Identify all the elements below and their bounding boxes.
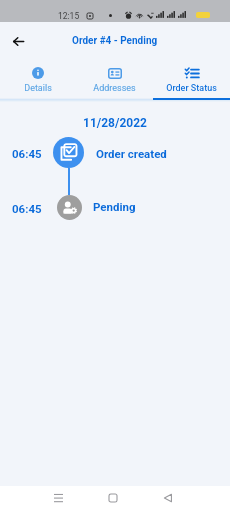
staticText: Pending <box>93 200 136 213</box>
staticText: 11/28/2022 <box>0 116 230 130</box>
staticText: Order created <box>96 147 167 160</box>
staticText: Details <box>24 83 52 94</box>
staticText: 06:45 <box>12 147 42 160</box>
staticText: Order Status <box>166 83 217 94</box>
button[interactable]: Navigate back <box>5 28 31 54</box>
staticText: 06:45 <box>12 202 42 215</box>
button[interactable]: Back <box>155 485 181 511</box>
button[interactable]: Details <box>0 58 76 98</box>
button[interactable]: Home <box>100 485 126 511</box>
staticText: Addresses <box>93 83 136 94</box>
button[interactable]: Recent apps <box>45 485 71 511</box>
button[interactable]: Order Status <box>153 58 230 98</box>
staticText: Order #4 - Pending <box>72 35 158 47</box>
staticText: 12:15 <box>58 11 80 21</box>
button[interactable]: Addresses <box>76 58 153 98</box>
